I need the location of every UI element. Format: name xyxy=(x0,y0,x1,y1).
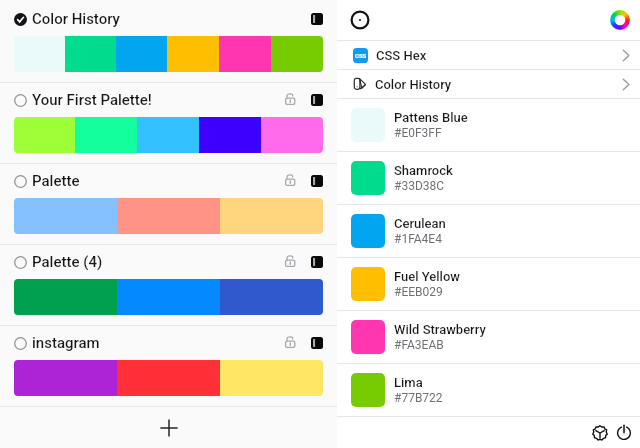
button[interactable]: CSS xyxy=(337,41,640,69)
staticText: Wild Strawberry xyxy=(394,322,486,337)
button[interactable]: Unlocked xyxy=(281,335,297,351)
button[interactable]: Shamrock xyxy=(337,152,640,204)
staticText: #EEB029 xyxy=(394,285,443,299)
button[interactable]: Cerulean xyxy=(337,205,640,257)
staticText: Color History xyxy=(32,10,120,28)
staticText: #E0F3FF xyxy=(394,126,442,140)
button[interactable]: Palette (4) xyxy=(0,245,337,325)
button[interactable]: Color wheel xyxy=(609,9,631,31)
button[interactable]: Color History xyxy=(337,70,640,98)
button[interactable]: Add palette xyxy=(0,407,337,448)
button[interactable]: Settings xyxy=(589,422,611,444)
staticText: #1FA4E4 xyxy=(394,232,442,246)
staticText: Palette (4) xyxy=(32,253,103,271)
staticText: Color History xyxy=(375,77,452,92)
button[interactable]: Your First Palette! xyxy=(0,83,337,163)
button[interactable]: Color History xyxy=(0,2,337,82)
button[interactable]: Wild Strawberry xyxy=(337,311,640,363)
staticText: instagram xyxy=(32,334,100,352)
button[interactable]: Eyedropper xyxy=(349,9,371,31)
button[interactable]: Pattens Blue xyxy=(337,99,640,151)
button[interactable]: Power xyxy=(613,422,635,444)
staticText: Lima xyxy=(394,375,423,390)
button[interactable]: Unlocked xyxy=(281,173,297,189)
button[interactable]: Toggle panel xyxy=(311,13,323,25)
button[interactable]: Toggle panel xyxy=(311,256,323,268)
staticText: CSS Hex xyxy=(376,48,427,63)
button[interactable]: Unlocked xyxy=(281,92,297,108)
staticText: Your First Palette! xyxy=(32,91,152,109)
button[interactable]: Toggle panel xyxy=(311,94,323,106)
staticText: CSS xyxy=(355,52,367,59)
button[interactable]: Unlocked xyxy=(281,254,297,270)
staticText: Shamrock xyxy=(394,163,453,178)
staticText: #77B722 xyxy=(394,391,443,405)
button[interactable]: Toggle panel xyxy=(311,337,323,349)
staticText: Palette xyxy=(32,172,80,190)
staticText: Pattens Blue xyxy=(394,110,468,125)
button[interactable]: Lima xyxy=(337,364,640,416)
button[interactable]: Toggle panel xyxy=(311,175,323,187)
button[interactable]: instagram xyxy=(0,326,337,406)
button[interactable]: Fuel Yellow xyxy=(337,258,640,310)
staticText: Fuel Yellow xyxy=(394,269,460,284)
staticText: Cerulean xyxy=(394,216,446,231)
staticText: #FA3EAB xyxy=(394,338,444,352)
staticText: #33D38C xyxy=(394,179,445,193)
button[interactable]: Palette xyxy=(0,164,337,244)
